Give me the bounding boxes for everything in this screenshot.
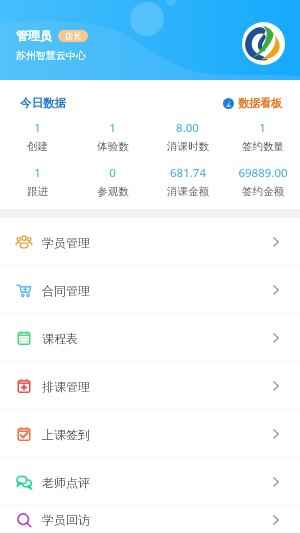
staticText: 店长 xyxy=(65,31,81,41)
staticText: 苏州智慧云中心 xyxy=(16,49,86,62)
staticText: 学员回访 xyxy=(42,512,90,527)
button[interactable]: 学员回访 xyxy=(0,506,300,533)
staticText: 上课签到 xyxy=(42,427,90,442)
staticText: 数据看板 xyxy=(238,96,282,110)
staticText: 1 xyxy=(259,120,266,136)
staticText: 管理员 xyxy=(16,28,52,43)
staticText: 0 xyxy=(109,165,116,181)
staticText: 跟进 xyxy=(27,185,48,198)
button[interactable]: 数据看板 xyxy=(223,96,282,110)
staticText: 课程表 xyxy=(42,331,78,346)
staticText: 1 xyxy=(34,165,41,181)
staticText: 今日数据 xyxy=(20,96,66,110)
staticText: 消课金额 xyxy=(167,185,209,198)
staticText: 消课时数 xyxy=(167,140,209,153)
button[interactable]: 合同管理 xyxy=(0,266,300,314)
staticText: 体验数 xyxy=(97,140,129,153)
staticText: 8.00 xyxy=(176,120,199,136)
staticText: 学员管理 xyxy=(42,235,90,250)
staticText: 681.74 xyxy=(170,165,206,181)
staticText: 1 xyxy=(109,120,116,136)
button[interactable]: Logo xyxy=(242,22,285,65)
staticText: 签约数量 xyxy=(242,140,284,153)
button[interactable]: 店长 xyxy=(58,30,88,42)
staticText: 合同管理 xyxy=(42,283,90,298)
button[interactable]: 排课管理 xyxy=(0,362,300,410)
staticText: 1 xyxy=(34,120,41,136)
staticText: 老师点评 xyxy=(42,475,90,490)
button[interactable]: 老师点评 xyxy=(0,458,300,506)
staticText: 69889.00 xyxy=(238,165,288,181)
button[interactable]: 上课签到 xyxy=(0,410,300,458)
staticText: 参观数 xyxy=(97,185,129,198)
button[interactable]: 学员管理 xyxy=(0,218,300,266)
staticText: 签约金额 xyxy=(242,185,284,198)
staticText: 排课管理 xyxy=(42,379,90,394)
staticText: 创建 xyxy=(27,140,48,153)
button[interactable]: 课程表 xyxy=(0,314,300,362)
